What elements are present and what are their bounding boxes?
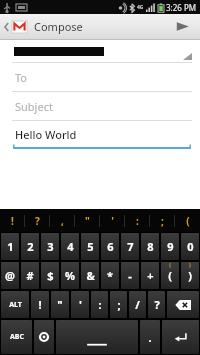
button[interactable]: 3 — [41, 233, 59, 260]
button[interactable]: @ — [1, 262, 19, 289]
button[interactable]: Enter — [162, 320, 199, 354]
staticText: % — [65, 268, 75, 283]
staticText: ; — [161, 214, 164, 228]
button[interactable]: 4 — [61, 233, 79, 260]
button[interactable]: , — [50, 209, 75, 232]
staticText: 1 — [7, 239, 14, 254]
staticText: ) — [188, 268, 192, 283]
button[interactable]: $ — [41, 262, 59, 289]
staticText: To — [15, 70, 28, 85]
staticText: ALT — [9, 300, 22, 310]
button[interactable]: ) — [181, 262, 199, 289]
button[interactable]: : — [91, 291, 108, 318]
staticText: ( — [168, 268, 172, 283]
staticText: ? — [154, 297, 160, 312]
button[interactable]: ' — [100, 209, 125, 232]
button[interactable]: * — [101, 262, 119, 289]
staticText: # — [26, 268, 34, 283]
button[interactable]: 2 — [21, 233, 39, 260]
button[interactable]: 9 — [161, 233, 179, 260]
button[interactable]: ! — [0, 209, 25, 232]
button[interactable]: 0 — [181, 233, 199, 260]
staticText: ! — [38, 297, 42, 312]
button[interactable]: Subject — [0, 92, 200, 120]
button[interactable]: : — [125, 209, 150, 232]
staticText: 3 — [47, 239, 54, 254]
button[interactable]: Space — [56, 320, 138, 354]
staticText: , — [61, 214, 64, 228]
button[interactable]: 7 — [121, 233, 139, 260]
staticText: + — [147, 268, 154, 283]
button[interactable]: ALT — [1, 291, 29, 318]
staticText: 4G — [137, 4, 144, 11]
staticText: - — [128, 268, 132, 283]
staticText: ; — [117, 297, 121, 312]
staticText: ' — [111, 214, 114, 228]
staticText: 8 — [147, 239, 154, 254]
staticText: } — [189, 262, 191, 269]
button[interactable]: . — [140, 320, 160, 354]
staticText: " — [57, 297, 63, 312]
button[interactable]: / — [129, 291, 146, 318]
staticText: / — [135, 297, 140, 312]
staticText: ? — [35, 214, 40, 228]
staticText: 9 — [167, 239, 174, 254]
button[interactable]: Send — [165, 16, 200, 37]
staticText: ' — [79, 297, 82, 312]
staticText: & — [86, 268, 95, 283]
button[interactable]: ! — [31, 291, 49, 318]
staticText: Hello World — [15, 127, 77, 142]
staticText: : — [98, 297, 102, 312]
button[interactable]: - — [121, 262, 139, 289]
staticText: @ — [5, 268, 15, 283]
button[interactable]: ; — [150, 209, 175, 232]
button[interactable]: 6 — [101, 233, 119, 260]
button[interactable]: " — [75, 209, 100, 232]
staticText: 2 — [27, 239, 34, 254]
button[interactable]: % — [61, 262, 79, 289]
staticText: : — [136, 214, 139, 228]
button[interactable]: ' — [71, 291, 89, 318]
staticText: . — [148, 330, 152, 345]
button[interactable]: ? — [148, 291, 165, 318]
button[interactable]: 8 — [141, 233, 159, 260]
staticText: { — [169, 262, 171, 269]
staticText: 0 — [187, 239, 194, 254]
staticText: ABC — [10, 332, 24, 342]
button[interactable]: & — [81, 262, 99, 289]
button[interactable]: + — [141, 262, 159, 289]
button[interactable]: ? — [25, 209, 50, 232]
button[interactable]: 5 — [81, 233, 99, 260]
staticText: Subject — [15, 99, 53, 114]
button[interactable]: ( — [175, 209, 200, 232]
staticText: 3:26 PM — [166, 2, 197, 13]
button[interactable]: Backspace — [167, 291, 199, 318]
button[interactable]: ( — [161, 262, 179, 289]
staticText: ( — [186, 214, 190, 228]
button[interactable]: 1 — [1, 233, 19, 260]
staticText: " — [85, 214, 90, 228]
staticText: 6 — [107, 239, 114, 254]
staticText: 4 — [67, 239, 74, 254]
staticText: $ — [47, 268, 54, 283]
button[interactable]: ; — [110, 291, 127, 318]
staticText: ! — [11, 214, 14, 228]
button[interactable]: ABC — [1, 320, 32, 354]
button[interactable]: # — [21, 262, 39, 289]
button[interactable]: Navigate up — [0, 20, 29, 34]
staticText: 7 — [127, 239, 134, 254]
staticText: * — [107, 268, 113, 283]
button[interactable]: " — [51, 291, 69, 318]
staticText: Compose — [34, 19, 83, 34]
button[interactable]: Keyboard settings — [34, 320, 54, 354]
staticText: 5 — [87, 239, 94, 254]
button[interactable]: To — [0, 63, 200, 91]
